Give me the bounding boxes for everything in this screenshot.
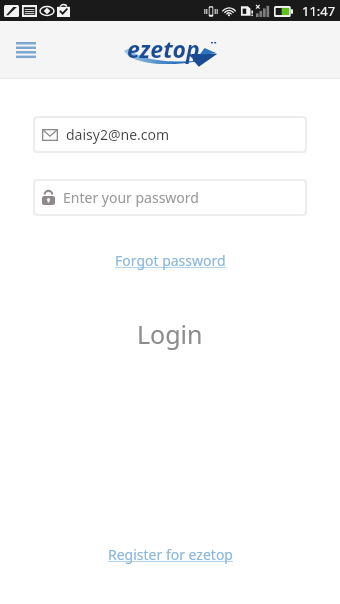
button[interactable]: Enter your password	[33, 179, 307, 216]
button[interactable]: Forgot password	[105, 246, 236, 275]
staticText: Register for ezetop	[108, 545, 233, 564]
staticText: 11:47	[302, 2, 336, 20]
staticText: ezetop	[127, 33, 200, 64]
button[interactable]: Register for ezetop	[98, 539, 243, 570]
button[interactable]: daisy2@ne.com	[33, 116, 307, 153]
staticText: Forgot password	[115, 251, 226, 270]
staticText: daisy2@ne.com	[66, 125, 170, 144]
button[interactable]: Login	[111, 309, 229, 359]
button[interactable]: Open navigation menu	[10, 36, 42, 64]
staticText: Login	[137, 317, 203, 351]
staticText: Enter your password	[63, 188, 199, 207]
